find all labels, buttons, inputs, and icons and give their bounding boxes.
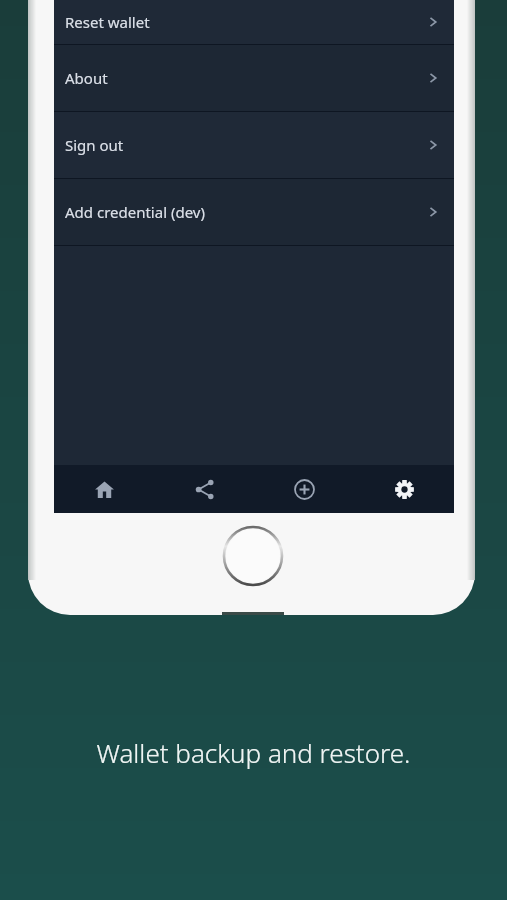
button[interactable]: About xyxy=(54,45,454,111)
staticText: About xyxy=(65,68,108,88)
staticText: Reset wallet xyxy=(65,12,150,32)
button[interactable]: Share xyxy=(154,465,254,513)
button[interactable]: Settings xyxy=(354,465,454,513)
staticText: Sign out xyxy=(65,135,124,155)
button[interactable]: Home xyxy=(54,465,154,513)
button[interactable]: Sign out xyxy=(54,112,454,178)
staticText: Wallet backup and restore. xyxy=(0,735,507,770)
staticText: Add credential (dev) xyxy=(65,202,205,222)
button[interactable]: Reset wallet xyxy=(54,0,454,44)
button[interactable]: Add credential (dev) xyxy=(54,179,454,245)
button[interactable]: Add xyxy=(254,465,354,513)
